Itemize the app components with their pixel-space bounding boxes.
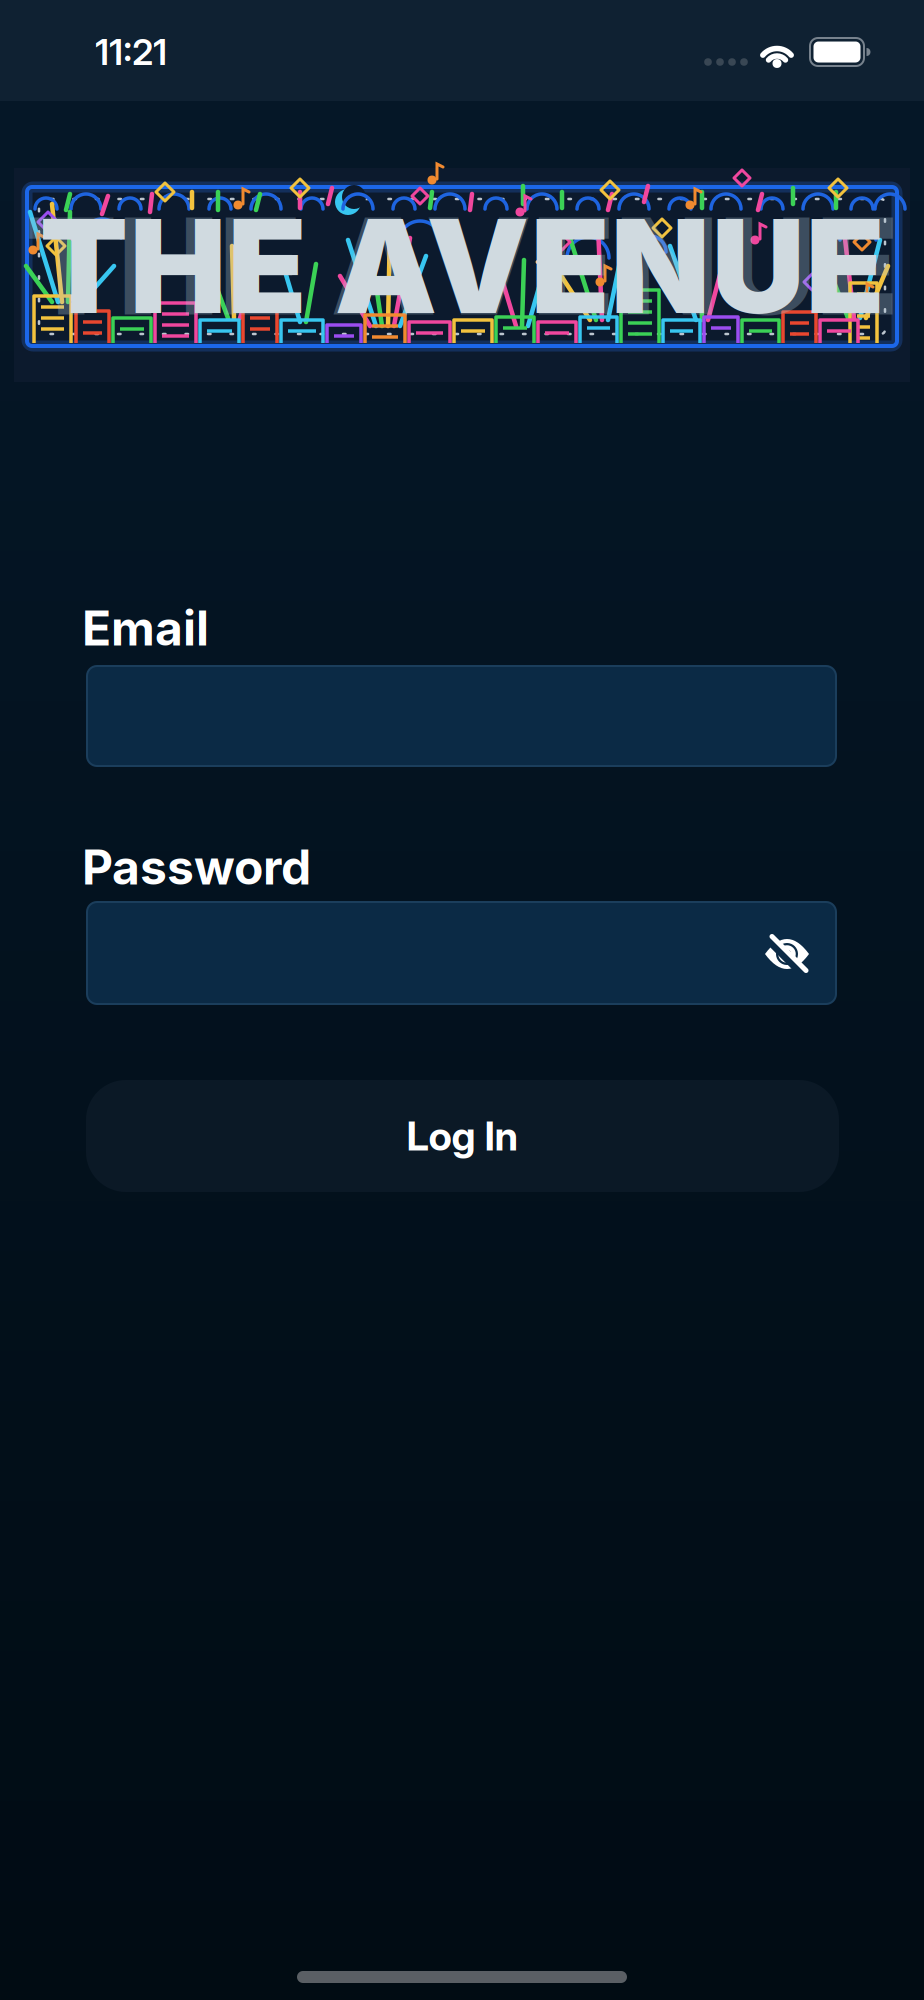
button[interactable]	[87, 902, 836, 1004]
staticText: Log In	[406, 1112, 518, 1160]
button[interactable]	[87, 666, 836, 766]
staticText: THE AVENUE	[25, 185, 898, 347]
staticText: Email	[82, 599, 209, 657]
button[interactable]: Log In	[86, 1080, 839, 1192]
staticText: Password	[82, 838, 311, 896]
staticText: 11:21	[95, 30, 167, 74]
staticText: THE AVENUE	[39, 188, 884, 344]
button[interactable]	[755, 922, 819, 986]
